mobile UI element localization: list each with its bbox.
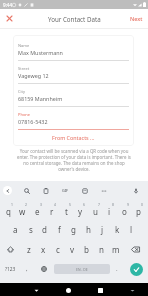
staticText: 5	[69, 202, 71, 207]
button[interactable]: l	[124, 219, 139, 239]
button[interactable]: Enter	[130, 263, 143, 276]
staticText: r	[50, 206, 54, 217]
button[interactable]: g	[66, 219, 81, 239]
button[interactable]: Change language	[37, 259, 51, 279]
button[interactable]: f	[52, 219, 67, 239]
button[interactable]: From Contacts ...	[51, 133, 96, 142]
button[interactable]: 8	[102, 199, 117, 219]
button[interactable]: Back	[3, 186, 12, 195]
staticText: 9:44	[3, 2, 13, 8]
staticText: h	[86, 224, 91, 235]
staticText: n	[99, 244, 104, 255]
button[interactable]: Hide keyboard	[30, 284, 42, 296]
button[interactable]: d	[37, 219, 52, 239]
button[interactable]: k	[110, 219, 125, 239]
staticText: y	[78, 206, 83, 217]
button[interactable]: More options	[99, 186, 108, 195]
staticText: v	[70, 244, 75, 255]
button[interactable]: j	[95, 219, 110, 239]
button[interactable]: b	[79, 239, 94, 259]
staticText: Your contact will be scanned via a QR co…	[16, 148, 132, 172]
button[interactable]: 7	[88, 199, 103, 219]
staticText: 3	[40, 202, 42, 207]
staticText: m	[112, 244, 120, 255]
staticText: 2	[25, 202, 27, 207]
staticText: p	[136, 206, 141, 217]
button[interactable]: z	[21, 239, 36, 259]
button[interactable]: .	[111, 259, 123, 279]
staticText: Vageweg 12	[18, 72, 49, 79]
staticText: ,	[26, 265, 28, 273]
button[interactable]: Recent apps	[94, 284, 106, 296]
button[interactable]: Switch keyboard	[126, 284, 138, 296]
staticText: q	[6, 206, 11, 217]
staticText: Street	[18, 66, 30, 71]
staticText: 4	[54, 202, 56, 207]
button[interactable]: ,	[20, 259, 34, 279]
staticText: 6	[83, 202, 85, 207]
staticText: 9	[127, 202, 129, 207]
button[interactable]: s	[23, 219, 38, 239]
staticText: x	[41, 244, 46, 255]
button[interactable]: h	[81, 219, 96, 239]
staticText: u	[93, 206, 98, 217]
staticText: Phone	[18, 112, 31, 117]
staticText: e	[35, 206, 40, 217]
button[interactable]: Home	[62, 284, 74, 296]
button[interactable]: Voice input	[131, 186, 140, 195]
staticText: Next	[130, 15, 143, 22]
staticText: a	[13, 224, 18, 235]
button[interactable]: n	[94, 239, 109, 259]
staticText: City	[18, 89, 26, 94]
button[interactable]: Close	[3, 12, 16, 25]
staticText: j	[101, 224, 104, 235]
button[interactable]: v	[65, 239, 80, 259]
staticText: l	[130, 224, 133, 235]
button[interactable]: 5	[59, 199, 74, 219]
button[interactable]: x	[36, 239, 51, 259]
staticText: .	[116, 265, 118, 273]
button[interactable]: Backspace	[128, 239, 143, 259]
staticText: t	[65, 206, 68, 217]
button[interactable]: Next	[129, 14, 144, 23]
button[interactable]: 6	[73, 199, 88, 219]
button[interactable]: m	[108, 239, 123, 259]
button[interactable]: 3	[30, 199, 45, 219]
staticText: 7	[98, 202, 100, 207]
button[interactable]: Search	[22, 186, 31, 195]
button[interactable]: ?123	[2, 259, 18, 279]
staticText: i	[108, 206, 111, 217]
button[interactable]: Stickers	[80, 186, 89, 195]
button[interactable]: 0	[131, 199, 146, 219]
button[interactable]: a	[8, 219, 23, 239]
staticText: o	[122, 206, 127, 217]
staticText: From Contacts ...	[52, 134, 95, 141]
staticText: d	[42, 224, 47, 235]
button[interactable]: Shift	[3, 239, 18, 259]
staticText: s	[29, 224, 33, 235]
staticText: 1	[11, 202, 13, 207]
staticText: 0	[141, 202, 143, 207]
button[interactable]: c	[50, 239, 65, 259]
staticText: GIF	[62, 188, 69, 193]
staticText: 07816-5432	[18, 118, 48, 125]
button[interactable]: 1	[1, 199, 16, 219]
staticText: z	[27, 244, 31, 255]
button[interactable]: 2	[15, 199, 30, 219]
staticText: b	[84, 244, 89, 255]
staticText: w	[19, 206, 26, 217]
button[interactable]: Space	[54, 264, 110, 274]
staticText: EN - DE	[76, 267, 88, 272]
button[interactable]: GIF	[61, 186, 70, 195]
staticText: f	[58, 224, 61, 235]
staticText: k	[115, 224, 120, 235]
staticText: Name	[18, 43, 30, 48]
staticText: 8	[112, 202, 114, 207]
button[interactable]: 4	[44, 199, 59, 219]
staticText: 68159 Mannheim	[18, 95, 63, 102]
button[interactable]: 9	[117, 199, 132, 219]
staticText: g	[71, 224, 76, 235]
staticText: c	[56, 244, 60, 255]
button[interactable]: Clipboard	[41, 186, 50, 195]
staticText: Max Mustermann	[18, 49, 63, 56]
